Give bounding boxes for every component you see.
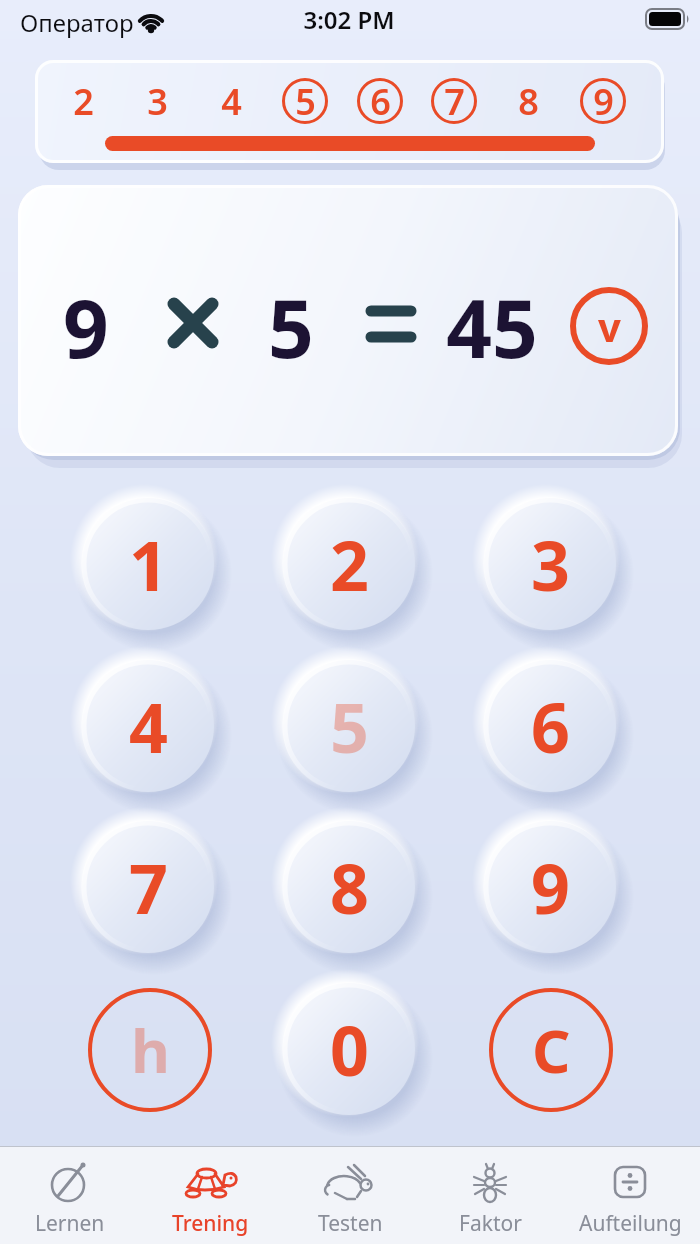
staticText: 0: [330, 1003, 369, 1096]
staticText: 6: [531, 680, 570, 773]
staticText: 2: [73, 77, 94, 123]
staticText: C: [532, 1009, 571, 1091]
button[interactable]: Lernen: [0, 1147, 140, 1244]
staticText: 3:02 PM: [303, 3, 395, 35]
button[interactable]: 0: [282, 982, 416, 1116]
staticText: 5: [295, 77, 316, 123]
staticText: 8: [330, 841, 369, 934]
button[interactable]: 2: [282, 497, 416, 631]
staticText: 9: [531, 841, 570, 934]
staticText: Faktor: [459, 1209, 522, 1238]
button[interactable]: 4: [208, 77, 254, 123]
button[interactable]: Testen: [280, 1147, 420, 1244]
button[interactable]: 1: [81, 497, 215, 631]
button[interactable]: 2: [60, 77, 106, 123]
staticText: 4: [221, 77, 242, 123]
staticText: 2: [330, 518, 369, 611]
button[interactable]: C: [488, 987, 614, 1113]
button[interactable]: 5: [282, 77, 328, 123]
staticText: 6: [370, 77, 391, 123]
staticText: 9: [593, 77, 614, 123]
button[interactable]: Faktor: [420, 1147, 560, 1244]
staticText: Lernen: [35, 1209, 105, 1238]
staticText: h: [131, 1009, 170, 1091]
button[interactable]: Trening: [140, 1147, 280, 1244]
button[interactable]: h: [87, 987, 213, 1113]
staticText: Trening: [172, 1209, 249, 1238]
button[interactable]: 3: [483, 497, 617, 631]
staticText: 7: [129, 841, 168, 934]
staticText: 8: [518, 77, 539, 123]
staticText: 3: [531, 518, 570, 611]
button[interactable]: 4: [81, 659, 215, 793]
staticText: 3: [147, 77, 168, 123]
staticText: 9: [63, 272, 109, 372]
button[interactable]: 3: [134, 77, 180, 123]
button[interactable]: 8: [282, 820, 416, 954]
staticText: 45: [446, 272, 538, 372]
button[interactable]: v: [569, 286, 649, 366]
button[interactable]: 7: [431, 77, 477, 123]
staticText: 1: [129, 518, 168, 611]
button[interactable]: 9: [483, 820, 617, 954]
staticText: Оператор: [20, 6, 134, 39]
staticText: v: [598, 299, 621, 353]
button[interactable]: Aufteilung: [560, 1147, 700, 1244]
staticText: 5: [330, 680, 369, 773]
staticText: Testen: [318, 1209, 383, 1238]
staticText: 4: [129, 680, 168, 773]
staticText: 7: [444, 77, 465, 123]
button[interactable]: 7: [81, 820, 215, 954]
button[interactable]: 6: [483, 659, 617, 793]
staticText: Aufteilung: [579, 1209, 682, 1238]
staticText: 5: [268, 272, 314, 372]
button[interactable]: 8: [505, 77, 551, 123]
button[interactable]: 9: [580, 77, 626, 123]
button[interactable]: 5: [282, 659, 416, 793]
button[interactable]: 6: [357, 77, 403, 123]
